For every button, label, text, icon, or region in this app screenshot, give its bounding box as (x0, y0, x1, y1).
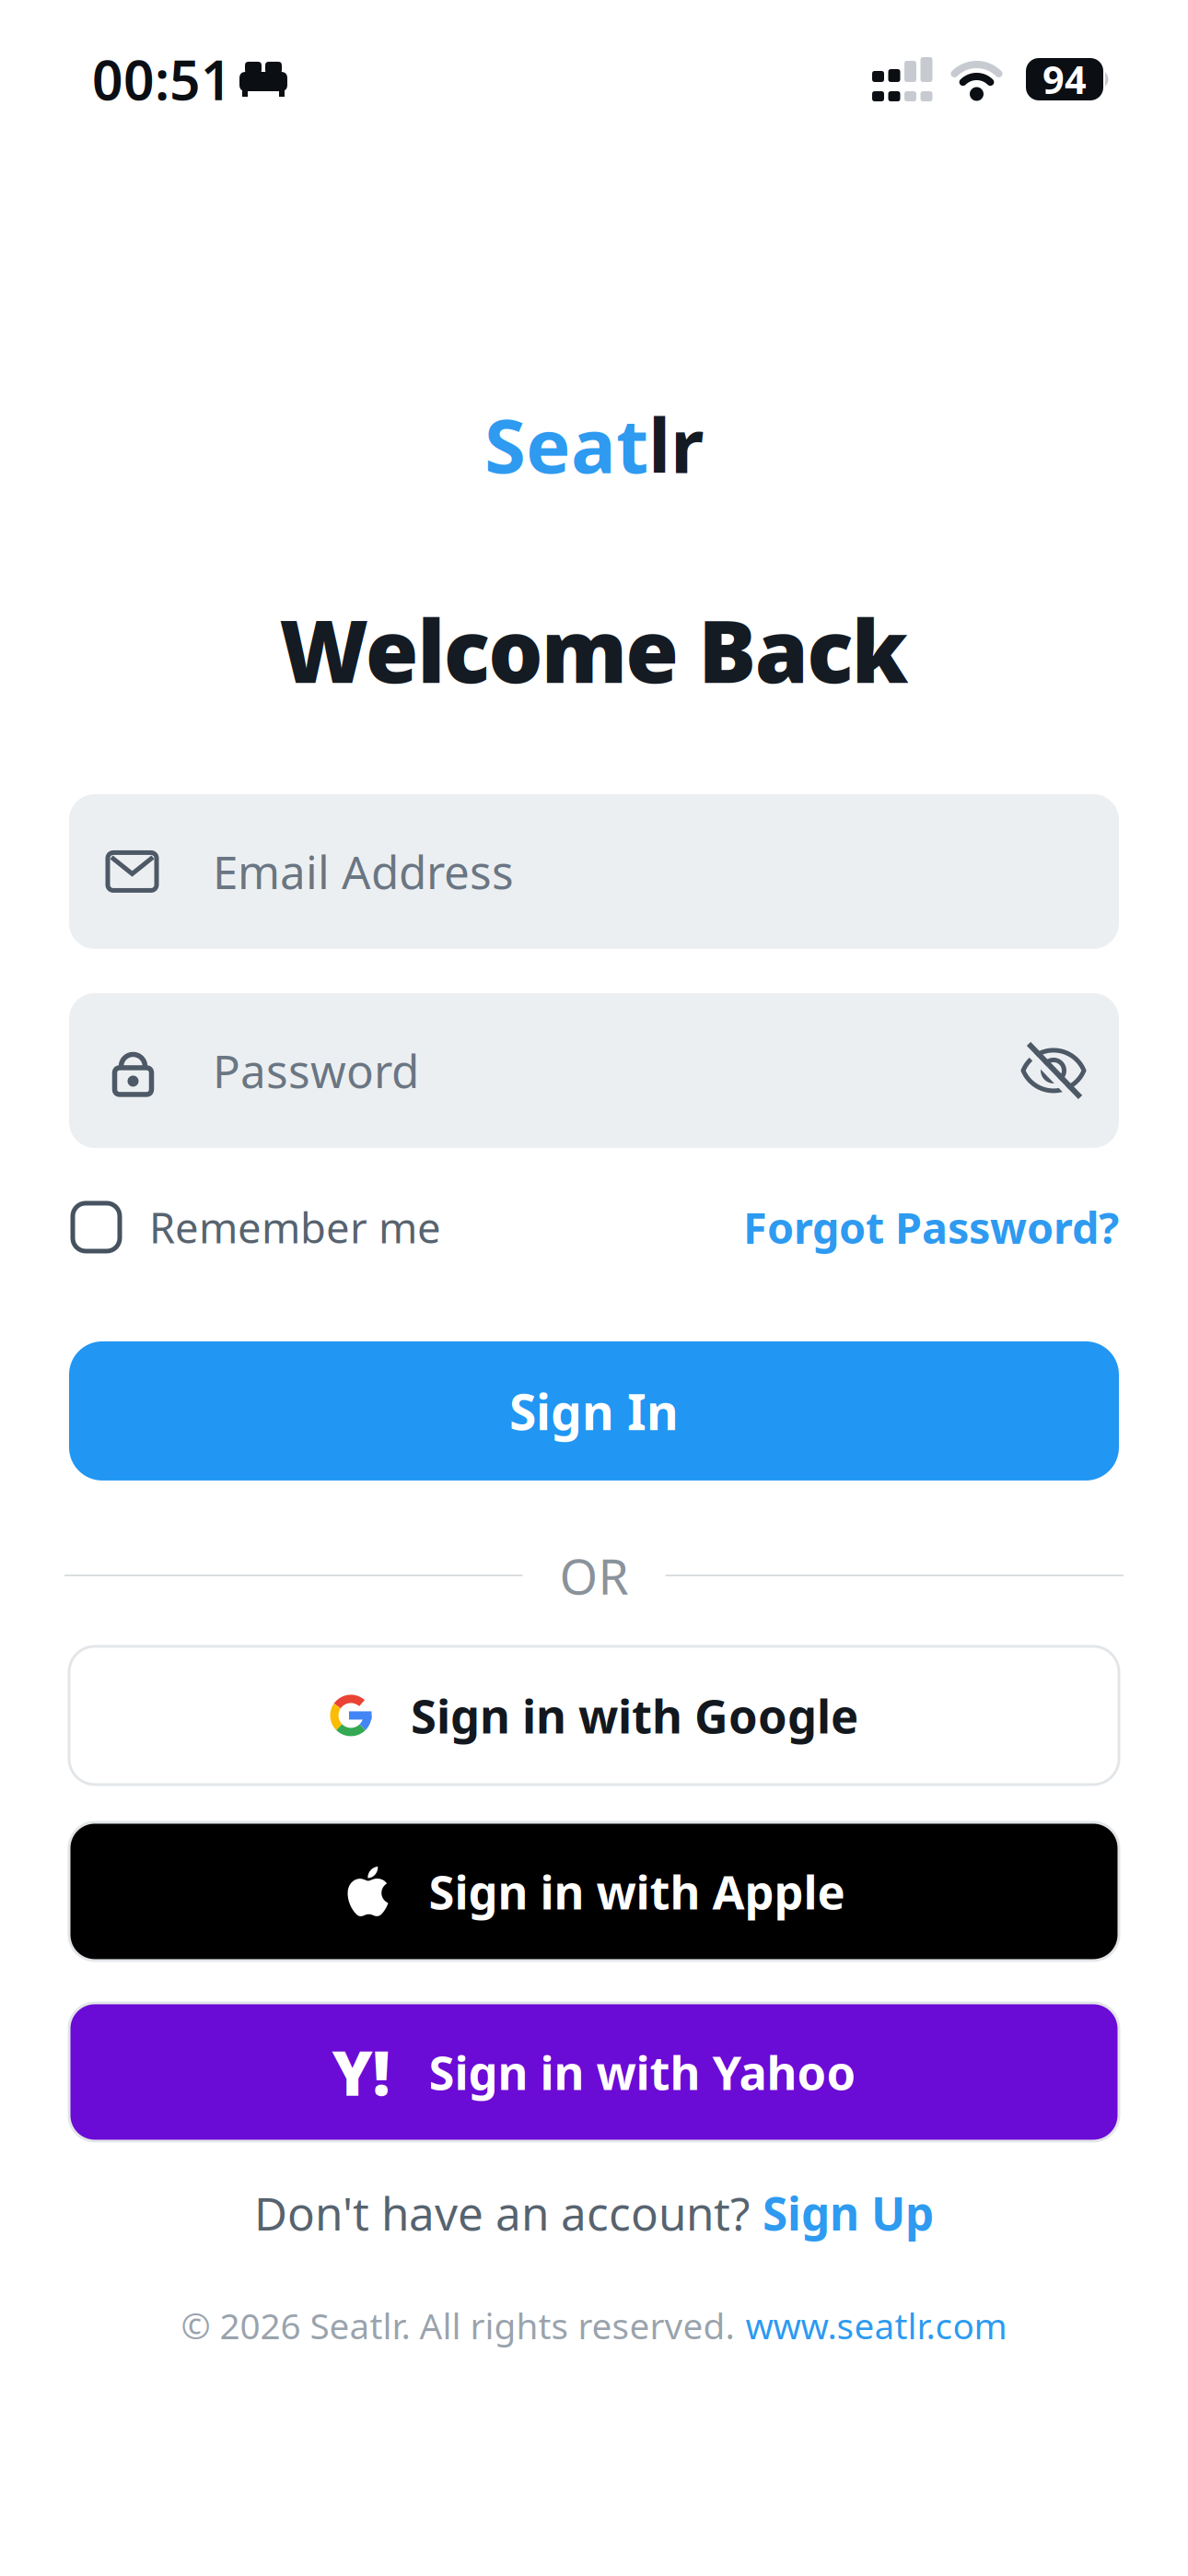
button[interactable]: Sign Up (763, 2183, 934, 2243)
button[interactable]: Show password (1023, 1044, 1084, 1097)
staticText: OR (559, 1543, 629, 1608)
staticText: Welcome Back (279, 592, 909, 707)
staticText: 94 (1042, 54, 1087, 105)
staticText: Don't have an account? (254, 2183, 750, 2243)
staticText: Password (213, 1040, 419, 1101)
button[interactable]: Sign in with Apple (69, 1822, 1119, 1961)
staticText: Sign Up (763, 2183, 934, 2243)
staticText: Forgot Password? (743, 1199, 1119, 1256)
staticText: www.seatlr.com (745, 2302, 1007, 2349)
button[interactable]: Sign in with Google (69, 1646, 1119, 1785)
staticText: Seat (484, 394, 648, 494)
staticText: Sign In (509, 1378, 679, 1444)
staticText: 00:51 (92, 43, 232, 115)
staticText: Email Address (213, 841, 514, 902)
staticText: Sign in with Google (411, 1684, 858, 1746)
button[interactable]: Forgot Password? (743, 1199, 1119, 1256)
staticText: Sign in with Apple (429, 1860, 845, 1922)
button[interactable]: www.seatlr.com (745, 2302, 1007, 2349)
staticText: © 2026 Seatlr. All rights reserved. (181, 2302, 734, 2349)
button[interactable]: Remember me (69, 1199, 441, 1255)
staticText: Sign in with Yahoo (429, 2041, 856, 2103)
staticText: lr (648, 394, 704, 494)
staticText: Y! (332, 2031, 390, 2113)
staticText: Remember me (149, 1199, 441, 1255)
button[interactable]: Y! (69, 2003, 1119, 2141)
button[interactable]: Sign In (69, 1341, 1119, 1481)
